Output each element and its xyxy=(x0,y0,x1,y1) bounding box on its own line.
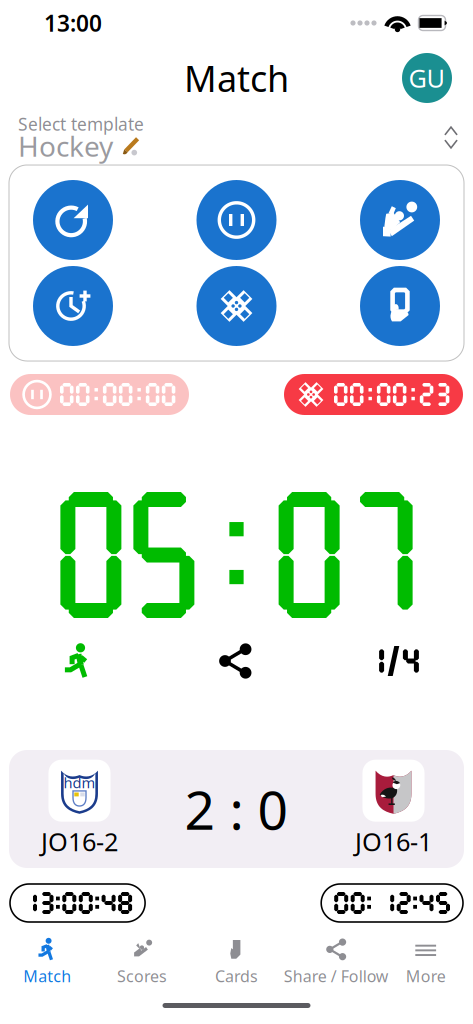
button[interactable]: Profile GU xyxy=(402,53,452,103)
staticText: 2 : 0 xyxy=(184,774,288,844)
staticText: Select template xyxy=(18,112,144,135)
button[interactable]: player xyxy=(360,180,440,260)
button[interactable]: reset xyxy=(33,180,113,260)
button[interactable]: Injury timer xyxy=(284,374,463,415)
button[interactable]: Select template xyxy=(0,110,473,165)
staticText: hdm xyxy=(63,773,95,792)
button[interactable]: Suspension timer xyxy=(10,374,189,415)
staticText: Scores xyxy=(117,965,167,987)
staticText: GU xyxy=(408,61,445,95)
button[interactable]: Cards xyxy=(189,935,284,987)
staticText: More xyxy=(406,965,446,987)
button[interactable]: bandage xyxy=(196,266,276,346)
button[interactable]: pause xyxy=(196,180,276,260)
staticText: JO16-1 xyxy=(355,825,432,858)
staticText: 13:00 xyxy=(44,8,102,38)
staticText: Match xyxy=(184,54,289,102)
button[interactable]: Match xyxy=(0,935,95,987)
button[interactable]: Share / Follow xyxy=(284,935,378,987)
button[interactable]: More xyxy=(378,935,473,987)
staticText: JO16-2 xyxy=(41,825,118,858)
button[interactable]: Share xyxy=(157,639,314,683)
staticText: Cards xyxy=(215,965,258,987)
button[interactable]: Scores xyxy=(95,935,189,987)
staticText: Hockey xyxy=(18,127,113,165)
staticText: Match xyxy=(23,965,71,987)
button[interactable]: Running time xyxy=(0,639,157,683)
button[interactable]: timeplus xyxy=(33,266,113,346)
staticText: Share / Follow xyxy=(284,965,389,987)
button[interactable]: card xyxy=(360,266,440,346)
